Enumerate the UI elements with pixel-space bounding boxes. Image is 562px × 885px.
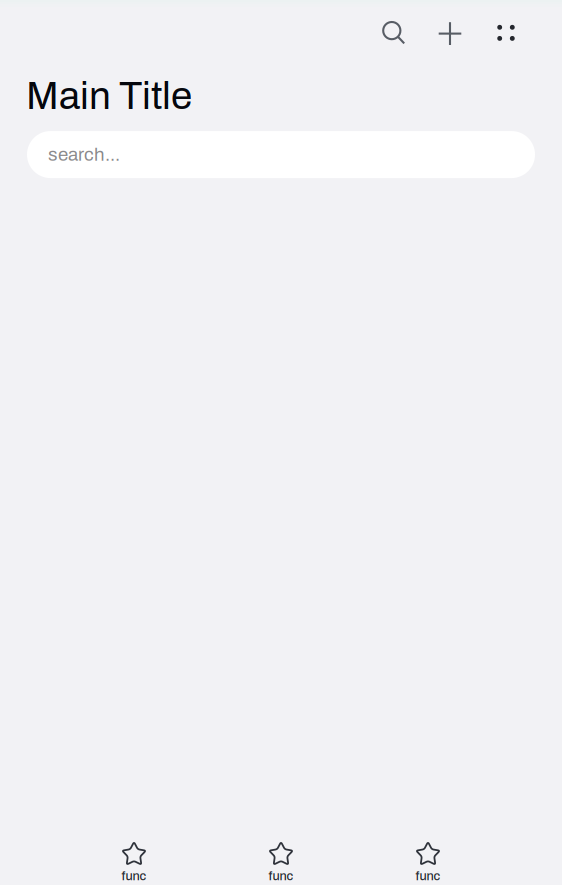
staticText: func [121, 869, 146, 883]
button[interactable]: Add [435, 17, 465, 47]
button[interactable]: Search [378, 17, 408, 47]
staticText: func [415, 869, 440, 883]
button[interactable]: search... [27, 131, 535, 178]
staticText: search... [48, 144, 120, 165]
button[interactable]: func [97, 832, 171, 885]
button[interactable]: More options [491, 17, 521, 47]
button[interactable]: func [391, 832, 465, 885]
staticText: func [268, 869, 293, 883]
button[interactable]: func [244, 832, 318, 885]
staticText: Main Title [26, 75, 192, 117]
